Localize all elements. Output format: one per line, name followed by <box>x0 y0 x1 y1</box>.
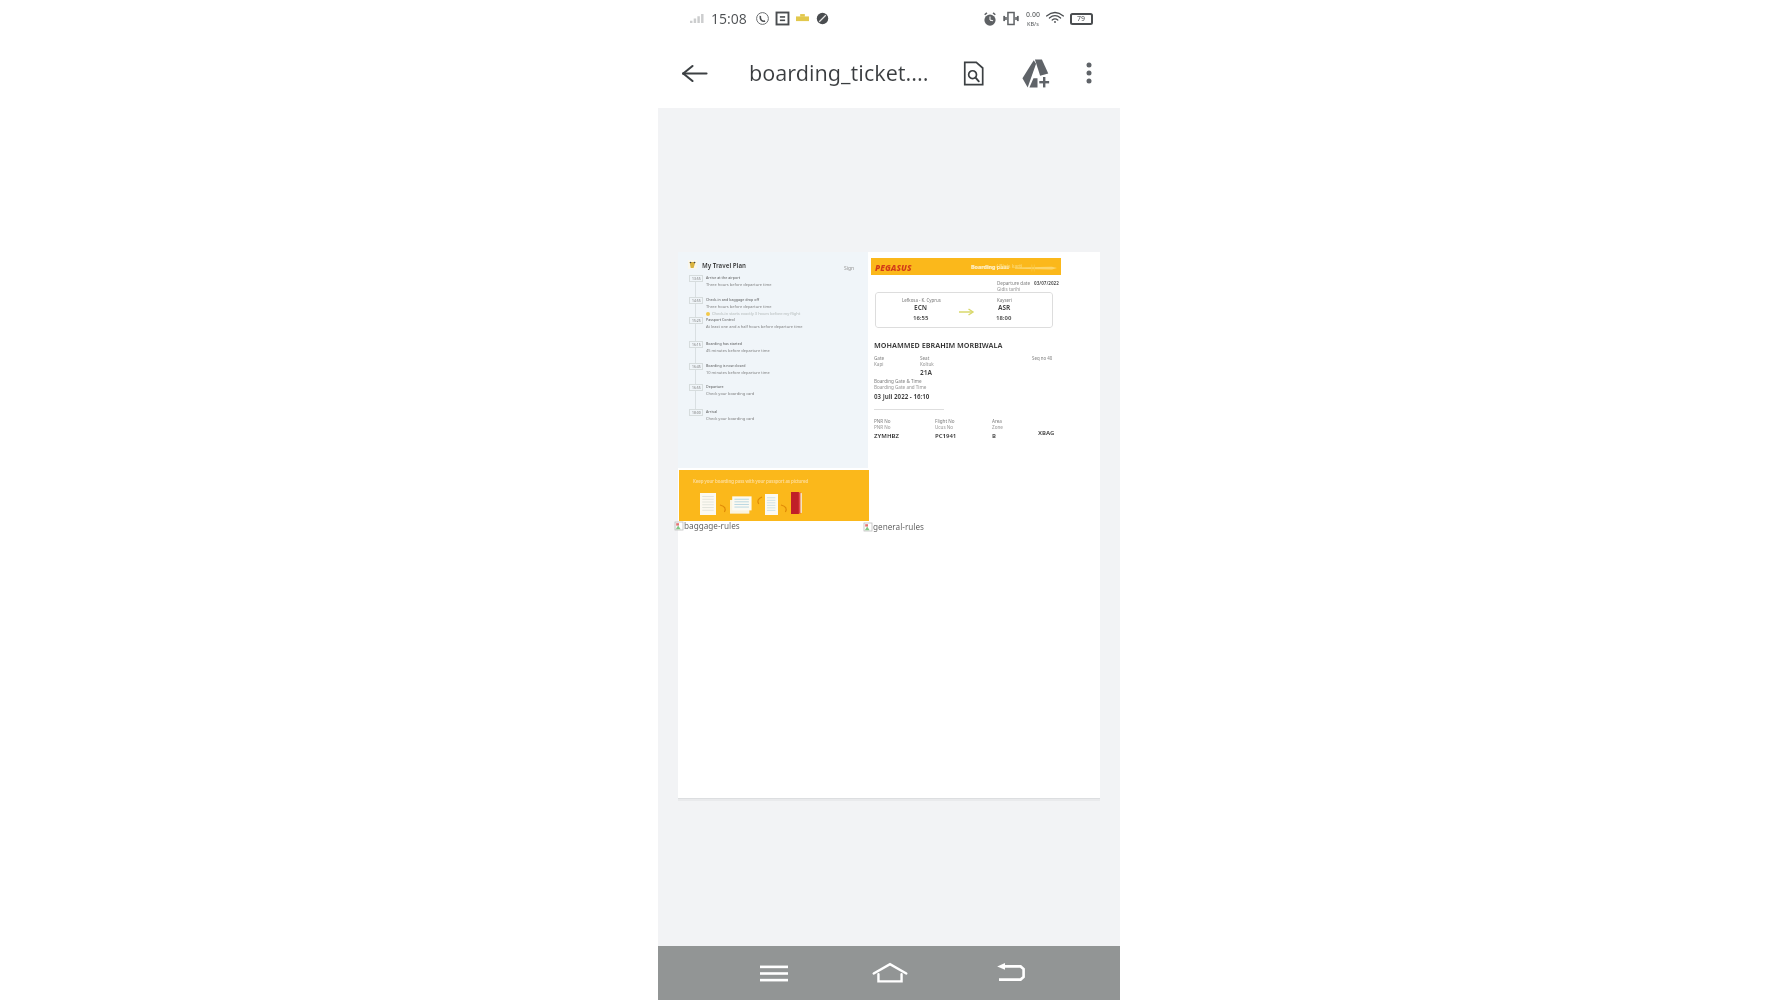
staticText: 18:00 <box>996 314 1012 322</box>
staticText: B <box>992 432 996 440</box>
staticText: My Travel Plan <box>702 261 747 269</box>
staticText: Boarding is now closed <box>706 363 746 368</box>
button[interactable]: Find in document <box>951 51 995 95</box>
staticText: 14:55 <box>692 298 701 303</box>
staticText: 18:00 <box>692 410 701 415</box>
staticText: 45 minutes before departure time <box>706 348 770 353</box>
staticText: 13:55 <box>692 276 701 281</box>
button[interactable]: Home <box>862 946 918 1000</box>
staticText: PC1941 <box>935 432 957 440</box>
staticText: Kayseri <box>997 297 1012 303</box>
staticText: PNR No <box>874 418 891 424</box>
button[interactable]: Back <box>983 946 1039 1000</box>
staticText: 03/07/2022 <box>1034 280 1059 286</box>
staticText: Area <box>992 418 1002 424</box>
staticText: Check-in and baggage drop off <box>706 297 759 302</box>
button[interactable]: More options <box>1066 50 1112 96</box>
staticText: ZYMHBZ <box>874 432 899 440</box>
staticText: Check your boarding card <box>706 416 755 421</box>
staticText: Gate <box>874 355 885 361</box>
staticText: PNR No <box>874 424 891 430</box>
staticText: KB/s <box>1027 20 1039 27</box>
staticText: Keep your boarding pass with your passpo… <box>693 478 809 484</box>
staticText: 16:55 <box>913 314 929 322</box>
staticText: Check your boarding card <box>706 391 755 396</box>
staticText: Seq no 40 <box>1032 355 1053 361</box>
staticText: Boarding has started <box>706 341 743 346</box>
staticText: Passport Control <box>706 317 735 322</box>
staticText: Check-in starts exactly 3 hours before m… <box>712 311 801 316</box>
staticText: Lefkosa - K. Cyprus <box>902 297 941 303</box>
staticText: 16:55 <box>692 385 701 390</box>
staticText: PEGASUS <box>875 262 912 273</box>
staticText: 16:15 <box>692 342 701 347</box>
staticText: 16:45 <box>692 364 701 369</box>
staticText: At least one and a half hours before dep… <box>706 324 803 329</box>
staticText: Arrival <box>706 409 718 414</box>
staticText: Boarding Gate & Time <box>874 378 922 384</box>
staticText: Seat <box>920 355 930 361</box>
staticText: 79 <box>1077 14 1086 24</box>
staticText: Ucus No <box>935 424 954 430</box>
staticText: boarding_ticket.... <box>749 58 929 87</box>
staticText: Flight No <box>935 418 955 424</box>
staticText: 10 minutes before departure time <box>706 370 770 375</box>
staticText: Three hours before departure time <box>706 304 772 309</box>
staticText: Three hours before departure time <box>706 282 772 287</box>
staticText: Koltuk <box>920 361 934 367</box>
staticText: 21A <box>920 368 932 377</box>
staticText: Boarding Gate and Time <box>874 384 927 390</box>
staticText: Departure date <box>997 280 1030 286</box>
staticText: Kapi <box>874 361 884 367</box>
staticText: / Binis karti <box>996 263 1023 270</box>
button[interactable]: Save to Drive <box>1013 51 1057 95</box>
button[interactable]: Navigate up <box>671 50 717 96</box>
staticText: Boarding pass <box>971 263 1009 270</box>
staticText: 15:25 <box>692 318 701 323</box>
staticText: Gidis tarihi <box>997 286 1021 292</box>
staticText: XBAG <box>1038 429 1055 437</box>
staticText: MOHAMMED EBRAHIM MORBIWALA <box>874 340 1003 350</box>
staticText: 03 Juli 2022 - 16:10 <box>874 392 930 400</box>
staticText: baggage-rules <box>684 520 740 531</box>
staticText: Sign <box>844 265 855 272</box>
staticText: 15:08 <box>711 9 747 28</box>
staticText: general-rules <box>873 521 924 532</box>
staticText: Departure <box>706 384 724 389</box>
staticText: ASR <box>998 303 1011 312</box>
button[interactable]: Recent apps <box>746 946 801 1000</box>
staticText: 0.00 <box>1026 10 1040 20</box>
staticText: Arrive at the airport <box>706 275 741 280</box>
staticText: ECN <box>914 303 928 312</box>
staticText: Zone <box>992 424 1003 430</box>
